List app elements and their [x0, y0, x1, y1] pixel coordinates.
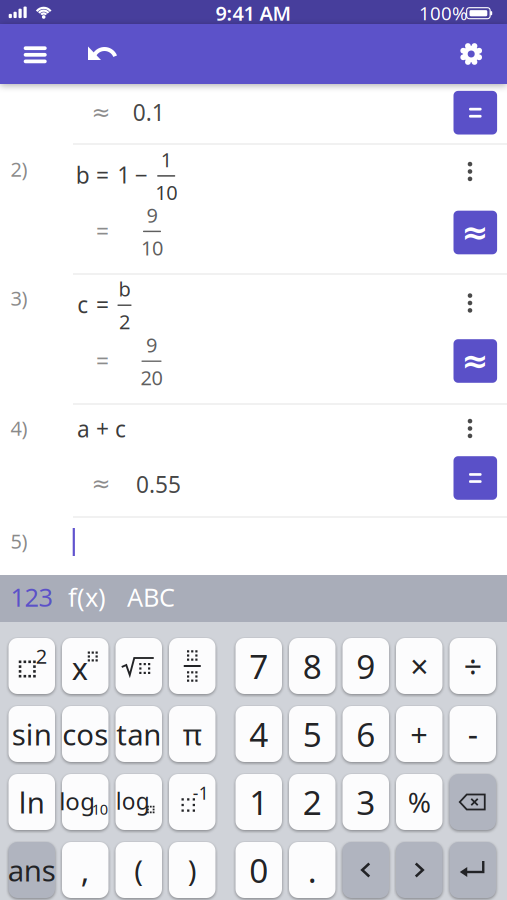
button[interactable]: 3 — [342, 774, 389, 830]
button[interactable]: Return — [449, 842, 496, 898]
button[interactable]: 4 — [235, 706, 282, 762]
staticText: . — [308, 848, 317, 892]
staticText: 10 — [92, 799, 108, 819]
button[interactable]: sin — [8, 706, 55, 762]
staticText: 5 — [303, 712, 322, 756]
staticText: 1 — [249, 780, 268, 824]
button[interactable]: Functions keyboard — [59, 576, 115, 618]
staticText: 1 — [161, 146, 172, 173]
button[interactable]: Numbers keyboard — [3, 576, 59, 618]
staticText: 9:41 AM — [215, 0, 291, 26]
staticText: π — [183, 714, 202, 753]
button[interactable]: Settings — [449, 31, 493, 75]
staticText: 2 — [119, 308, 130, 335]
button[interactable]: . — [289, 842, 335, 898]
button[interactable]: ( — [115, 842, 162, 898]
staticText: f(x) — [68, 580, 106, 614]
staticText: = — [96, 215, 109, 246]
button[interactable]: 1 — [235, 774, 282, 830]
staticText: -1 — [193, 781, 209, 804]
staticText: ) — [188, 850, 197, 889]
staticText: , — [81, 849, 90, 891]
staticText: 2 — [303, 780, 322, 824]
staticText: 0.55 — [136, 469, 181, 499]
button[interactable]: Row options — [453, 408, 487, 448]
button[interactable]: fraction — [169, 638, 215, 694]
button[interactable]: square root — [115, 638, 162, 694]
staticText: log — [59, 785, 95, 817]
staticText: cos — [62, 714, 108, 753]
staticText: a + c — [77, 414, 126, 444]
staticText: = — [96, 289, 109, 319]
staticText: 2 — [36, 643, 47, 669]
staticText: ÷ — [464, 645, 482, 687]
button[interactable]: 8 — [289, 638, 335, 694]
button[interactable]: Approximate — [453, 211, 497, 254]
staticText: 3) — [10, 285, 27, 311]
staticText: 123 — [10, 580, 52, 614]
button[interactable]: Menu — [13, 33, 57, 77]
button[interactable]: Move left — [342, 842, 389, 898]
staticText: b — [118, 275, 130, 302]
button[interactable]: Evaluate — [453, 456, 497, 500]
staticText: 4) — [10, 415, 27, 441]
staticText: ans — [8, 850, 56, 889]
staticText: × — [410, 645, 428, 687]
button[interactable]: power — [62, 638, 108, 694]
button[interactable]: log base n — [115, 774, 162, 830]
staticText: 3 — [356, 780, 375, 824]
button[interactable]: squared — [8, 638, 55, 694]
staticText: ≈ — [91, 471, 110, 496]
button[interactable]: 2 — [289, 774, 335, 830]
button[interactable]: 6 — [342, 706, 389, 762]
staticText: 5) — [10, 528, 27, 554]
button[interactable]: ln — [8, 774, 55, 830]
button[interactable]: ) — [169, 842, 215, 898]
button[interactable]: Undo — [80, 32, 124, 76]
staticText: 8 — [303, 644, 322, 688]
button[interactable]: Evaluate — [453, 91, 497, 134]
staticText: % — [408, 783, 431, 821]
button[interactable]: Row options — [453, 151, 487, 191]
staticText: − — [135, 160, 148, 190]
button[interactable]: + — [396, 706, 442, 762]
staticText: 1 — [117, 160, 130, 190]
button[interactable]: tan — [115, 706, 162, 762]
staticText: ≈ — [462, 214, 489, 251]
staticText: 9 — [356, 644, 375, 688]
button[interactable]: % — [396, 774, 442, 830]
button[interactable]: 5 — [289, 706, 335, 762]
staticText: ABC — [127, 580, 175, 614]
staticText: ln — [19, 782, 45, 821]
button[interactable]: Row options — [453, 283, 487, 323]
button[interactable]: 9 — [342, 638, 389, 694]
button[interactable]: Delete — [449, 774, 496, 830]
button[interactable]: 7 — [235, 638, 282, 694]
staticText: = — [96, 345, 109, 375]
button[interactable]: Move right — [396, 842, 442, 898]
button[interactable]: log base 10 — [62, 774, 108, 830]
staticText: c — [77, 289, 88, 319]
staticText: 9 — [146, 202, 157, 228]
button[interactable]: ÷ — [449, 638, 496, 694]
button[interactable]: Letters keyboard — [119, 576, 183, 618]
staticText: 7 — [249, 644, 268, 688]
button[interactable]: cos — [62, 706, 108, 762]
staticText: 0 — [249, 848, 268, 892]
staticText: log — [116, 786, 150, 816]
staticText: x — [72, 648, 88, 688]
button[interactable]: 0 — [235, 842, 282, 898]
staticText: 2) — [10, 156, 27, 182]
button[interactable]: × — [396, 638, 442, 694]
button[interactable]: ans — [8, 842, 55, 898]
button[interactable]: Approximate — [453, 339, 497, 383]
staticText: 4 — [249, 712, 268, 756]
button[interactable]: inverse — [169, 774, 215, 830]
staticText: 0.1 — [133, 97, 165, 127]
button[interactable]: , — [62, 842, 108, 898]
staticText: ( — [134, 850, 143, 889]
staticText: ≈ — [462, 343, 489, 379]
button[interactable]: π — [169, 706, 215, 762]
button[interactable]: - — [449, 706, 496, 762]
staticText: 100% — [419, 1, 468, 25]
